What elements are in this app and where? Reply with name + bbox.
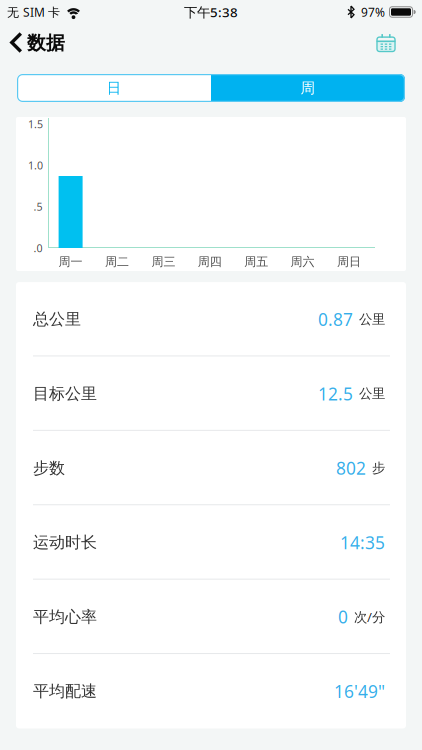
staticText: 总公里: [33, 309, 81, 329]
staticText: 次/分: [354, 608, 385, 626]
staticText: 周一: [59, 254, 83, 269]
staticText: 周五: [244, 254, 268, 269]
staticText: 周二: [105, 254, 129, 269]
staticText: 周六: [291, 254, 315, 269]
staticText: 无 SIM 卡: [7, 4, 60, 20]
staticText: 日: [106, 79, 121, 97]
staticText: 周三: [151, 254, 175, 269]
staticText: 97%: [361, 4, 385, 20]
staticText: 14:35: [340, 531, 385, 554]
staticText: 数据: [27, 31, 65, 54]
staticText: 平均心率: [33, 607, 97, 627]
staticText: 运动时长: [33, 533, 97, 552]
staticText: 0: [338, 605, 348, 628]
button[interactable]: 日: [17, 74, 211, 102]
staticText: 步数: [33, 458, 65, 478]
staticText: 12.5: [318, 382, 353, 405]
button[interactable]: Calendar: [376, 33, 422, 52]
staticText: 周日: [337, 254, 361, 269]
button[interactable]: 数据: [0, 31, 65, 54]
staticText: .0: [33, 241, 42, 255]
staticText: 周: [300, 79, 315, 97]
staticText: 公里: [359, 385, 385, 402]
staticText: 1.0: [28, 158, 43, 172]
staticText: 0.87: [318, 308, 353, 331]
staticText: 步: [372, 460, 385, 476]
staticText: 公里: [359, 311, 385, 327]
staticText: 16'49": [334, 680, 385, 703]
staticText: 1.5: [28, 117, 43, 131]
staticText: 下午5:38: [184, 3, 238, 21]
staticText: 周四: [198, 254, 222, 269]
staticText: 平均配速: [33, 681, 97, 701]
button[interactable]: 周: [211, 74, 405, 102]
staticText: 802: [336, 456, 366, 479]
staticText: 目标公里: [33, 384, 97, 403]
staticText: .5: [33, 200, 42, 214]
